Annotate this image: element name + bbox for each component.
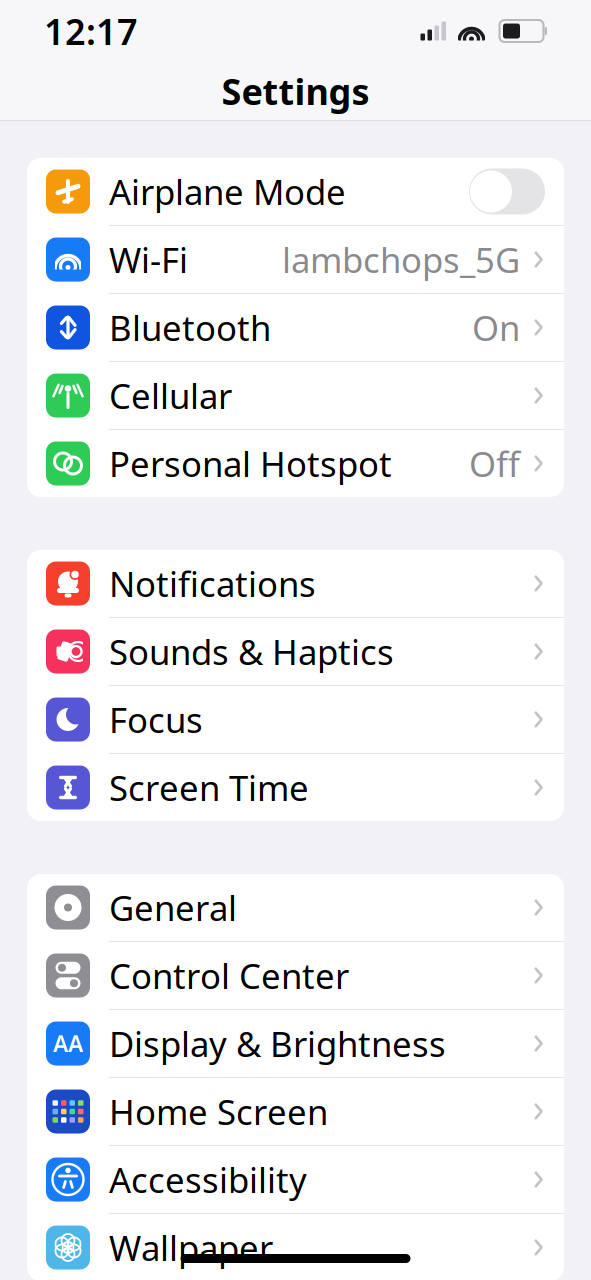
staticText: Home Screen — [109, 1088, 328, 1134]
button[interactable]: Personal Hotspot — [27, 430, 564, 497]
staticText: Settings — [221, 67, 369, 115]
staticText: Airplane Mode — [109, 168, 346, 214]
button[interactable]: Accessibility — [27, 1146, 564, 1213]
staticText: Personal Hotspot — [109, 440, 392, 486]
button[interactable]: AA — [27, 1010, 564, 1077]
button[interactable]: Control Center — [27, 942, 564, 1009]
button[interactable]: General — [27, 874, 564, 941]
staticText: Cellular — [109, 372, 232, 418]
staticText: lambchops_5G — [282, 236, 520, 282]
button[interactable]: Cellular — [27, 362, 564, 429]
staticText: Screen Time — [109, 764, 309, 810]
staticText: Off — [469, 440, 520, 486]
button[interactable]: Screen Time — [27, 754, 564, 821]
staticText: General — [109, 884, 237, 930]
button[interactable]: Home Screen — [27, 1078, 564, 1145]
button[interactable]: Bluetooth — [27, 294, 564, 361]
button[interactable]: Airplane Mode — [27, 158, 564, 225]
staticText: Wi-Fi — [109, 236, 188, 282]
staticText: On — [472, 304, 520, 350]
staticText: Accessibility — [109, 1156, 307, 1202]
staticText: Control Center — [109, 952, 349, 998]
staticText: Sounds & Haptics — [109, 628, 394, 674]
button[interactable]: Wi-Fi — [27, 226, 564, 293]
staticText: Wallpaper — [109, 1224, 273, 1270]
staticText: Notifications — [109, 560, 316, 606]
button[interactable]: Sounds & Haptics — [27, 618, 564, 685]
button[interactable]: Wallpaper — [27, 1214, 564, 1280]
staticText: 12:17 — [44, 7, 138, 55]
staticText: Bluetooth — [109, 304, 271, 350]
button[interactable]: Notifications — [27, 550, 564, 617]
button[interactable]: Focus — [27, 686, 564, 753]
staticText: Focus — [109, 696, 203, 742]
staticText: AA — [53, 1028, 83, 1058]
staticText: Display & Brightness — [109, 1020, 446, 1066]
